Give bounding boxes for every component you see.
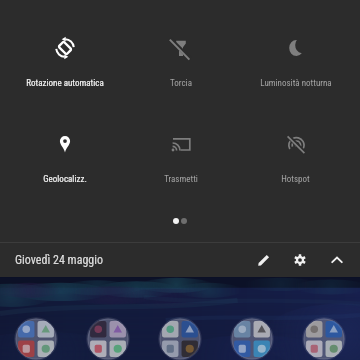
button[interactable]: Rotazione automatica: [7, 38, 123, 89]
button[interactable]: Luminosità notturna: [238, 38, 353, 89]
staticText: Geolocalizz.: [43, 174, 87, 185]
button[interactable]: Geolocalizz.: [7, 134, 123, 185]
button[interactable]: Hotspot: [238, 134, 353, 185]
staticText: Hotspot: [281, 174, 310, 185]
button[interactable]: Edit: [247, 243, 280, 277]
button[interactable]: Torcia: [123, 38, 238, 89]
staticText: Torcia: [170, 78, 192, 89]
staticText: Luminosità notturna: [260, 78, 332, 89]
staticText: Rotazione automatica: [26, 78, 104, 89]
staticText: Trasmetti: [164, 174, 198, 185]
staticText: Giovedì 24 maggio: [15, 253, 103, 267]
button[interactable]: Collapse: [320, 243, 353, 277]
button[interactable]: Settings: [283, 243, 316, 277]
button[interactable]: Trasmetti: [123, 134, 238, 185]
